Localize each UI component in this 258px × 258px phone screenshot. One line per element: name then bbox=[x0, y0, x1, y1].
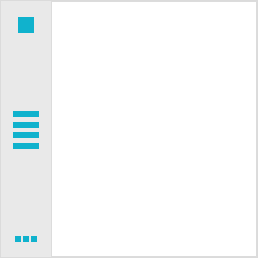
button[interactable]: More options bbox=[15, 236, 36, 242]
button[interactable]: List bbox=[13, 111, 39, 149]
